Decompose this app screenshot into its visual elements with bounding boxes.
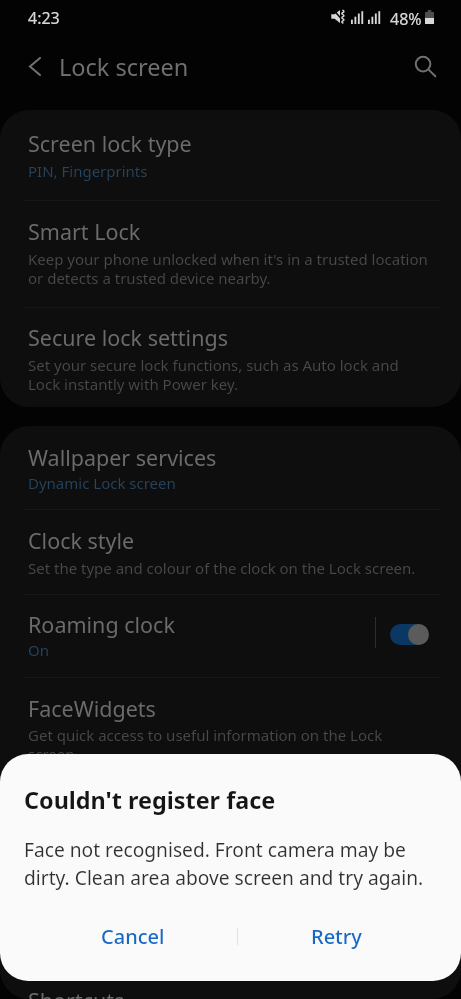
staticText: Show information such as your email addr… xyxy=(28,914,433,953)
staticText: Notifications xyxy=(28,799,156,828)
button[interactable]: Shortcuts xyxy=(0,986,461,999)
staticText: PIN, Fingerprints xyxy=(28,161,148,181)
staticText: Roaming clock xyxy=(28,610,175,639)
staticText: Secure lock settings xyxy=(28,323,228,352)
staticText: FaceWidgets xyxy=(28,694,156,723)
button[interactable]: Roaming clock xyxy=(0,610,461,660)
staticText: Dynamic Lock screen xyxy=(28,473,176,493)
button[interactable]: Smart Lock xyxy=(0,217,461,287)
button[interactable]: Search xyxy=(405,46,445,86)
button[interactable]: Wallpaper services xyxy=(0,443,461,493)
staticText: Keep your phone unlocked when it's in a … xyxy=(28,249,433,288)
staticText: Retry xyxy=(311,923,362,950)
staticText: Clock style xyxy=(28,526,135,555)
staticText: Lock screen xyxy=(59,51,189,83)
button[interactable]: Contact information xyxy=(0,883,461,953)
staticText: Select which notification details are sh… xyxy=(28,830,433,869)
staticText: On xyxy=(28,640,49,660)
button[interactable]: Retry xyxy=(233,905,439,967)
other xyxy=(408,624,429,645)
staticText: 48% xyxy=(390,8,422,30)
staticText: Wallpaper services xyxy=(28,443,217,472)
staticText: Shortcuts xyxy=(28,986,125,999)
staticText: Smart Lock xyxy=(28,217,141,246)
button[interactable]: Cancel xyxy=(30,905,236,967)
staticText: Face not recognised. Front camera may be… xyxy=(24,836,436,891)
staticText: Get quick access to useful information o… xyxy=(28,725,433,764)
staticText: Screen lock type xyxy=(28,129,192,158)
button[interactable]: FaceWidgets xyxy=(0,694,461,764)
button[interactable]: Navigate up xyxy=(15,46,55,86)
button[interactable]: Clock style xyxy=(0,526,461,596)
button[interactable]: Secure lock settings xyxy=(0,323,461,393)
staticText: Set your secure lock functions, such as … xyxy=(28,355,433,394)
button[interactable]: Notifications xyxy=(0,799,461,869)
staticText: Couldn't register face xyxy=(24,784,276,816)
staticText: Contact information xyxy=(28,883,232,912)
staticText: 4:23 xyxy=(28,7,60,29)
staticText: Cancel xyxy=(101,923,165,950)
button[interactable]: Screen lock type xyxy=(0,129,461,179)
button[interactable]: Roaming clock on xyxy=(390,624,428,645)
staticText: Set the type and colour of the clock on … xyxy=(28,558,416,578)
